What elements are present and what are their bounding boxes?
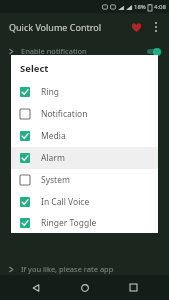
button[interactable]: Enable notification toggle: [147, 47, 161, 56]
staticText: System: [41, 174, 70, 186]
button[interactable]: Notification: [11, 103, 158, 125]
staticText: Quick Volume Control: [9, 21, 102, 33]
button[interactable]: Ring: [11, 81, 158, 103]
staticText: If you like, please rate app: [21, 264, 114, 274]
staticText: Enable notification: [21, 46, 87, 56]
button[interactable]: If you like, please rate app: [0, 258, 169, 280]
staticText: 18%: [134, 3, 146, 11]
staticText: Ring: [41, 86, 59, 98]
button[interactable]: Alarm: [11, 147, 158, 169]
staticText: Check out more apps by us: [21, 285, 117, 295]
staticText: Select: [20, 62, 49, 75]
button[interactable]: In Call Voice: [11, 191, 158, 213]
button[interactable]: System: [11, 169, 158, 191]
staticText: Media: [41, 130, 66, 142]
button[interactable]: Back: [23, 275, 49, 300]
button[interactable]: Media: [11, 125, 158, 147]
button[interactable]: Recent apps: [120, 275, 146, 300]
button[interactable]: Home: [72, 275, 98, 300]
button[interactable]: Enable notification: [0, 40, 169, 62]
button[interactable]: Favorite: [125, 16, 147, 38]
button[interactable]: Ringer Toggle: [11, 213, 158, 233]
staticText: Notification: [41, 108, 88, 120]
button[interactable]: Check out more apps by us: [0, 280, 169, 300]
button[interactable]: More options: [147, 18, 165, 36]
staticText: Ringer Toggle: [41, 217, 97, 229]
staticText: In Call Voice: [41, 196, 90, 208]
staticText: 4:08: [154, 3, 166, 11]
staticText: Alarm: [41, 152, 65, 164]
